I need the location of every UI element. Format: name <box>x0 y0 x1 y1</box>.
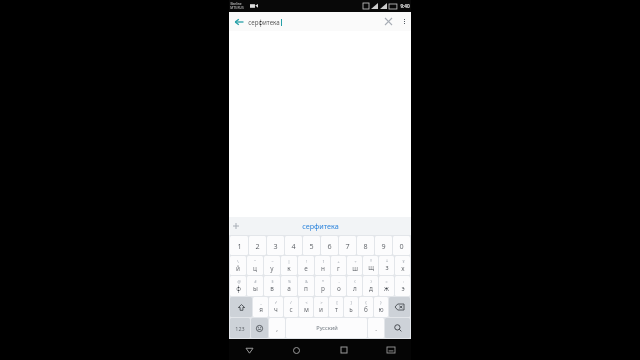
button[interactable]: / <box>284 297 298 317</box>
button[interactable]: % <box>281 276 297 296</box>
button[interactable]: ] <box>344 297 358 317</box>
staticText: ґ <box>275 300 277 305</box>
button[interactable]: * <box>315 276 330 296</box>
staticText: ю <box>378 305 384 314</box>
staticText: \ <box>237 259 239 264</box>
staticText: ч <box>274 305 278 314</box>
button[interactable]: | <box>281 256 297 275</box>
button[interactable]: 2 <box>249 236 266 255</box>
button[interactable]: [ <box>329 297 343 317</box>
button[interactable]: Key <box>230 318 250 338</box>
button[interactable]: ¥ <box>395 256 410 275</box>
staticText: ↑ <box>369 259 373 263</box>
button[interactable]: Clear <box>379 12 398 31</box>
button[interactable]: 6 <box>321 236 338 255</box>
staticText: ш <box>352 264 358 273</box>
staticText: з <box>385 263 389 272</box>
staticText: % <box>288 279 291 284</box>
button[interactable]: Back <box>239 340 259 360</box>
staticText: - <box>338 279 340 284</box>
staticText: , <box>276 324 278 332</box>
staticText: н <box>321 264 325 273</box>
staticText: р <box>321 284 325 293</box>
button[interactable]: : <box>395 276 410 296</box>
button[interactable]: серфитека <box>302 221 339 231</box>
button[interactable]: 7 <box>339 236 356 255</box>
staticText: б <box>364 305 368 314</box>
staticText: Beeline <box>230 2 242 6</box>
staticText: серфитека <box>248 18 280 26</box>
staticText: е <box>304 264 308 273</box>
button[interactable]: Key <box>251 318 268 338</box>
button[interactable]: Key <box>385 318 410 338</box>
staticText: ж <box>384 284 389 293</box>
button[interactable]: Key <box>389 297 410 317</box>
staticText: ь <box>349 305 353 314</box>
button[interactable]: " <box>247 256 263 275</box>
button[interactable]: Hide keyboard <box>381 340 401 360</box>
button[interactable]: Home <box>286 340 306 360</box>
button[interactable]: _ <box>253 297 268 317</box>
button[interactable]: Recents <box>334 340 354 360</box>
staticText: ] <box>350 300 352 305</box>
button[interactable]: - <box>331 276 346 296</box>
staticText: ( <box>354 279 356 284</box>
staticText: в <box>270 284 274 293</box>
button[interactable]: & <box>298 276 314 296</box>
button[interactable]: > <box>314 297 328 317</box>
staticText: 2 <box>255 241 260 251</box>
staticText: 4 <box>291 241 296 251</box>
button[interactable]: Back <box>229 12 248 31</box>
button[interactable]: 9 <box>375 236 392 255</box>
button[interactable]: { <box>359 297 373 317</box>
button[interactable]: , <box>269 318 285 338</box>
button[interactable]: ) <box>363 276 378 296</box>
button[interactable]: Add <box>229 219 243 233</box>
staticText: г <box>337 264 340 273</box>
staticText: & <box>305 279 308 284</box>
staticText: ↓ <box>385 259 389 263</box>
button[interactable]: More options <box>398 15 411 28</box>
button[interactable]: $ <box>264 276 280 296</box>
staticText: 9 <box>381 241 386 251</box>
button[interactable]: + <box>331 256 346 275</box>
staticText: й <box>236 264 240 273</box>
staticText: л <box>353 284 357 293</box>
button[interactable]: ↓ <box>379 256 394 275</box>
button[interactable]: } <box>374 297 388 317</box>
button[interactable]: 4 <box>285 236 302 255</box>
staticText: . <box>375 324 377 332</box>
button[interactable]: @ <box>230 276 246 296</box>
staticText: ф <box>236 284 241 293</box>
staticText: # <box>254 279 257 284</box>
staticText: ~ <box>271 259 274 264</box>
staticText: м <box>304 305 309 314</box>
button[interactable]: Русский <box>286 318 367 338</box>
button[interactable]: 3 <box>267 236 284 255</box>
button[interactable]: \ <box>230 256 246 275</box>
button[interactable]: < <box>299 297 313 317</box>
staticText: * <box>322 279 324 284</box>
staticText: > <box>320 300 323 305</box>
button[interactable]: ~ <box>264 256 280 275</box>
button[interactable]: ↑ <box>363 256 378 275</box>
button[interactable]: . <box>368 318 384 338</box>
button[interactable]: 5 <box>303 236 320 255</box>
button[interactable]: Key <box>230 297 252 317</box>
button[interactable]: 1 <box>315 256 330 275</box>
staticText: я <box>259 305 263 314</box>
button[interactable]: ґ <box>269 297 283 317</box>
button[interactable]: = <box>379 276 394 296</box>
button[interactable]: # <box>247 276 263 296</box>
button[interactable]: 8 <box>357 236 374 255</box>
staticText: д <box>369 284 373 293</box>
staticText: т <box>335 305 338 314</box>
button[interactable]: 0 <box>393 236 410 255</box>
staticText: 9:40 <box>400 3 410 9</box>
button[interactable]: 1 <box>230 236 248 255</box>
button[interactable]: ( <box>347 276 362 296</box>
staticText: : <box>403 279 404 284</box>
button[interactable]: ! <box>298 256 314 275</box>
staticText: < <box>305 300 308 305</box>
button[interactable]: ÷ <box>347 256 362 275</box>
